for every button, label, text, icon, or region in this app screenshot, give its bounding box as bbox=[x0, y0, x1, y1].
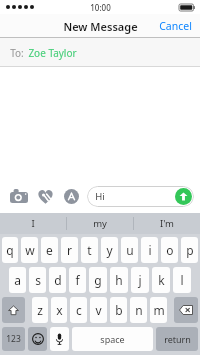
staticText: p bbox=[186, 242, 194, 258]
button[interactable]: a bbox=[9, 267, 26, 293]
button[interactable]: c bbox=[70, 297, 87, 323]
button[interactable]: Hi bbox=[87, 186, 194, 207]
staticText: y bbox=[106, 242, 113, 258]
staticText: m bbox=[153, 302, 165, 318]
staticText: space bbox=[100, 333, 125, 345]
button[interactable]: I'm bbox=[134, 213, 200, 234]
staticText: Hi bbox=[95, 190, 105, 203]
staticText: o bbox=[166, 242, 174, 258]
button[interactable]: h bbox=[110, 267, 128, 293]
button[interactable]: m bbox=[150, 297, 167, 323]
staticText: t bbox=[87, 242, 92, 258]
button[interactable]: i bbox=[141, 237, 158, 263]
button[interactable]: u bbox=[121, 237, 138, 263]
button[interactable]: z bbox=[32, 297, 48, 323]
button[interactable]: g bbox=[89, 267, 107, 293]
staticText: v bbox=[95, 302, 102, 318]
button[interactable]: y bbox=[101, 237, 118, 263]
staticText: n bbox=[135, 302, 143, 318]
button[interactable]: my bbox=[67, 213, 133, 234]
staticText: 123 bbox=[6, 333, 21, 345]
staticText: u bbox=[126, 242, 134, 258]
staticText: a bbox=[14, 272, 21, 288]
button[interactable]: k bbox=[152, 267, 170, 293]
staticText: e bbox=[46, 242, 53, 258]
button[interactable]: Send bbox=[175, 188, 192, 205]
button[interactable]: Shift bbox=[2, 297, 25, 323]
button[interactable]: 123 bbox=[2, 327, 25, 351]
button[interactable]: space bbox=[72, 327, 153, 351]
staticText: c bbox=[76, 302, 82, 318]
staticText: my bbox=[93, 217, 107, 230]
staticText: i bbox=[148, 242, 152, 258]
staticText: b bbox=[115, 302, 123, 318]
button[interactable]: q bbox=[2, 237, 18, 263]
button[interactable]: n bbox=[130, 297, 147, 323]
button[interactable]: t bbox=[81, 237, 98, 263]
staticText: z bbox=[37, 302, 43, 318]
button[interactable]: o bbox=[161, 237, 178, 263]
staticText: New Message bbox=[63, 19, 138, 34]
staticText: j bbox=[138, 272, 142, 288]
staticText: I bbox=[31, 217, 35, 230]
staticText: d bbox=[54, 272, 62, 288]
button[interactable]: j bbox=[131, 267, 149, 293]
button[interactable]: f bbox=[69, 267, 86, 293]
button[interactable]: v bbox=[90, 297, 107, 323]
button[interactable]: l bbox=[173, 267, 191, 293]
button[interactable]: return bbox=[156, 327, 198, 351]
staticText: h bbox=[115, 272, 123, 288]
button[interactable]: Delete bbox=[174, 297, 198, 323]
staticText: s bbox=[35, 272, 41, 288]
button[interactable]: w bbox=[21, 237, 38, 263]
staticText: g bbox=[94, 272, 102, 288]
button[interactable]: Emoji bbox=[28, 327, 47, 351]
button[interactable]: r bbox=[61, 237, 78, 263]
staticText: To: bbox=[10, 46, 24, 60]
staticText: x bbox=[56, 302, 63, 318]
button[interactable]: Camera bbox=[6, 183, 32, 209]
button[interactable]: e bbox=[41, 237, 58, 263]
button[interactable]: To: bbox=[0, 38, 200, 67]
staticText: r bbox=[67, 242, 72, 258]
button[interactable]: App Store bbox=[58, 183, 84, 209]
button[interactable]: I bbox=[0, 213, 66, 234]
staticText: f bbox=[75, 272, 80, 288]
button[interactable]: d bbox=[49, 267, 66, 293]
button[interactable]: x bbox=[51, 297, 67, 323]
button[interactable]: Dictation bbox=[50, 327, 69, 351]
staticText: Cancel bbox=[159, 19, 192, 33]
staticText: w bbox=[25, 242, 35, 258]
staticText: k bbox=[158, 272, 165, 288]
button[interactable]: s bbox=[29, 267, 46, 293]
staticText: l bbox=[180, 272, 184, 288]
button[interactable]: b bbox=[110, 297, 127, 323]
staticText: I'm bbox=[160, 217, 174, 230]
staticText: 10:00 bbox=[90, 2, 111, 13]
staticText: Zoe Taylor bbox=[28, 46, 77, 60]
staticText: q bbox=[6, 242, 14, 258]
staticText: return bbox=[164, 333, 191, 345]
button[interactable]: Digital Touch bbox=[32, 183, 58, 209]
button[interactable]: p bbox=[181, 237, 198, 263]
button[interactable]: Cancel bbox=[151, 14, 200, 38]
